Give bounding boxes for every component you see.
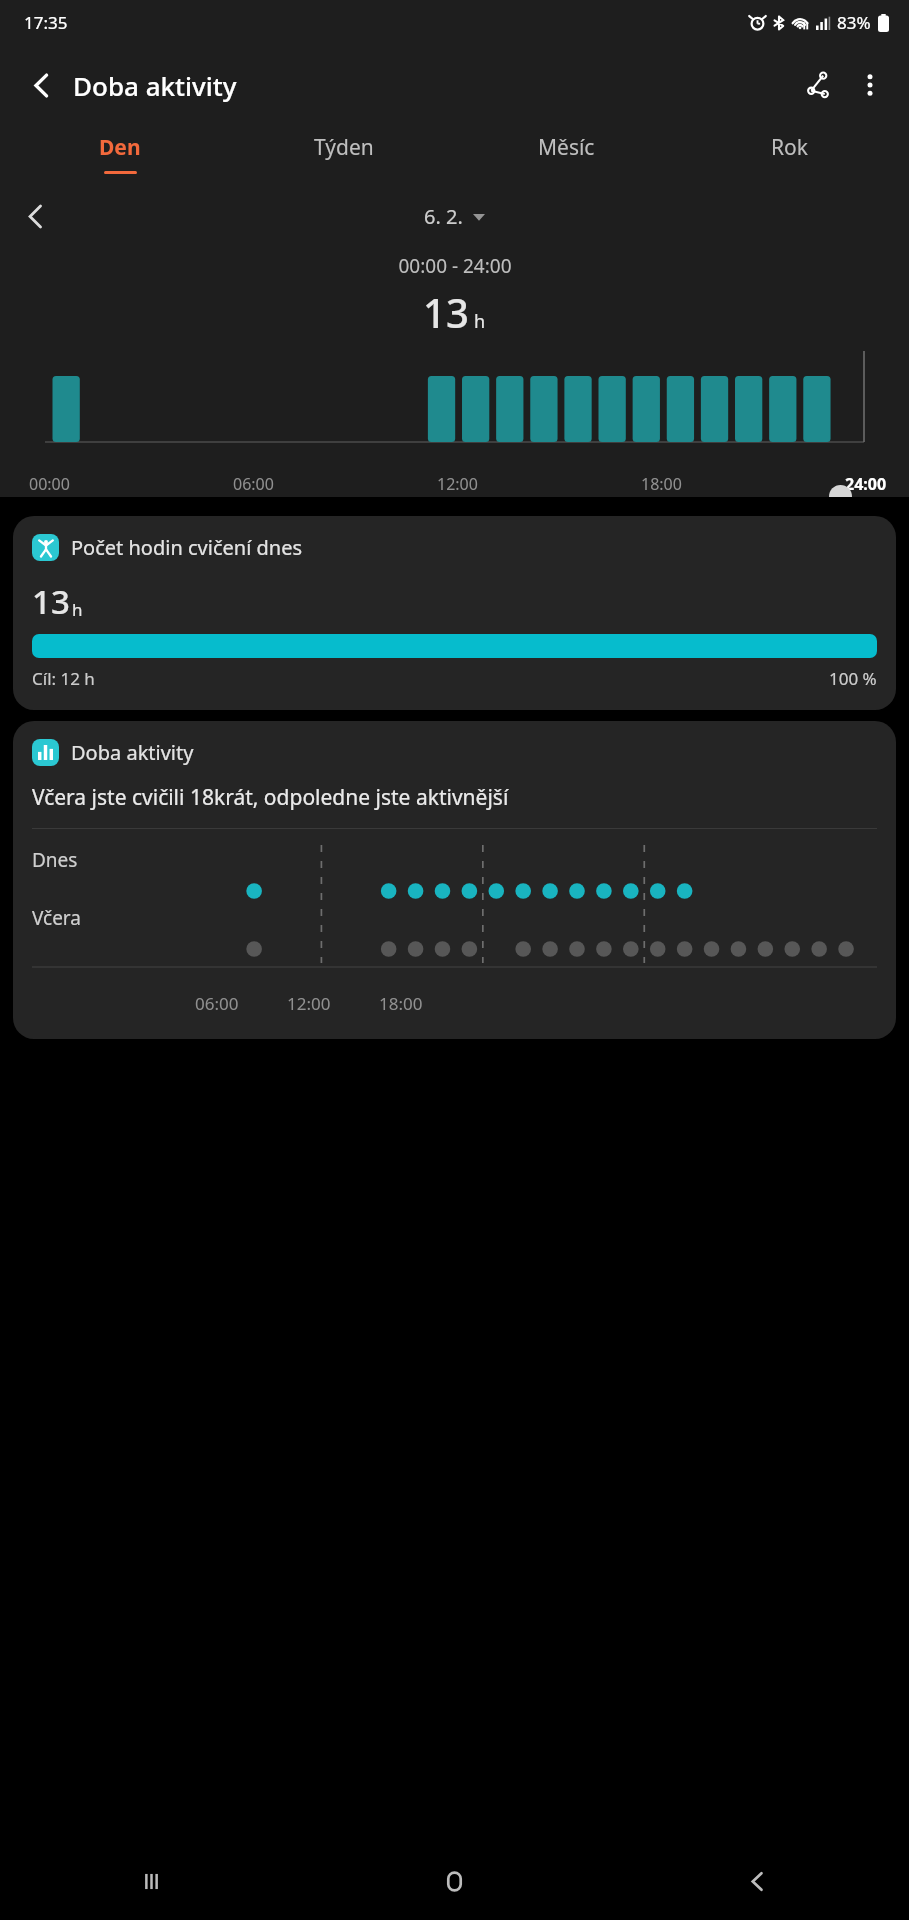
button[interactable]: 6. 2. xyxy=(424,203,485,230)
button[interactable]: Rok xyxy=(678,125,901,189)
staticText: Doba aktivity xyxy=(71,739,194,766)
staticText: 83% xyxy=(837,11,871,34)
button[interactable]: Recent apps xyxy=(0,1842,303,1920)
staticText: Měsíc xyxy=(538,133,595,162)
button[interactable]: Share xyxy=(791,58,845,112)
staticText: Den xyxy=(99,133,141,162)
staticText: 24:00 xyxy=(845,473,887,495)
button[interactable]: Týden xyxy=(232,125,455,189)
staticText: 100 % xyxy=(829,667,877,690)
staticText: 06:00 xyxy=(233,473,274,495)
button[interactable]: More options xyxy=(845,60,895,110)
staticText: Cíl: 12 h xyxy=(32,667,95,690)
button[interactable]: Back xyxy=(606,1842,909,1920)
button[interactable]: Previous day xyxy=(8,189,62,243)
staticText: h xyxy=(72,598,83,621)
staticText: Včera jste cvičili 18krát, odpoledne jst… xyxy=(32,783,509,812)
staticText: 18:00 xyxy=(641,473,682,495)
button[interactable]: Měsíc xyxy=(455,125,678,189)
button[interactable]: Doba aktivity xyxy=(13,721,896,1039)
staticText: Doba aktivity xyxy=(73,68,237,103)
staticText: 13 xyxy=(32,579,70,624)
staticText: 6. 2. xyxy=(424,203,463,230)
staticText: 00:00 xyxy=(29,473,70,495)
staticText: Rok xyxy=(771,133,808,162)
staticText: 13 xyxy=(423,285,469,339)
staticText: h xyxy=(474,309,486,334)
button[interactable]: Den xyxy=(8,125,232,189)
staticText: 12:00 xyxy=(287,992,331,1015)
staticText: 06:00 xyxy=(195,992,239,1015)
button[interactable]: Home xyxy=(303,1842,606,1920)
staticText: 00:00 - 24:00 xyxy=(398,253,512,279)
staticText: 12:00 xyxy=(437,473,478,495)
staticText: 17:35 xyxy=(24,11,68,34)
staticText: Týden xyxy=(314,133,374,162)
staticText: Dnes xyxy=(32,847,78,873)
staticText: Včera xyxy=(32,905,81,931)
button[interactable]: Počet hodin cvičení dnes xyxy=(13,516,896,710)
staticText: 18:00 xyxy=(379,992,423,1015)
button[interactable]: Back xyxy=(16,60,66,110)
staticText: Počet hodin cvičení dnes xyxy=(71,534,303,561)
